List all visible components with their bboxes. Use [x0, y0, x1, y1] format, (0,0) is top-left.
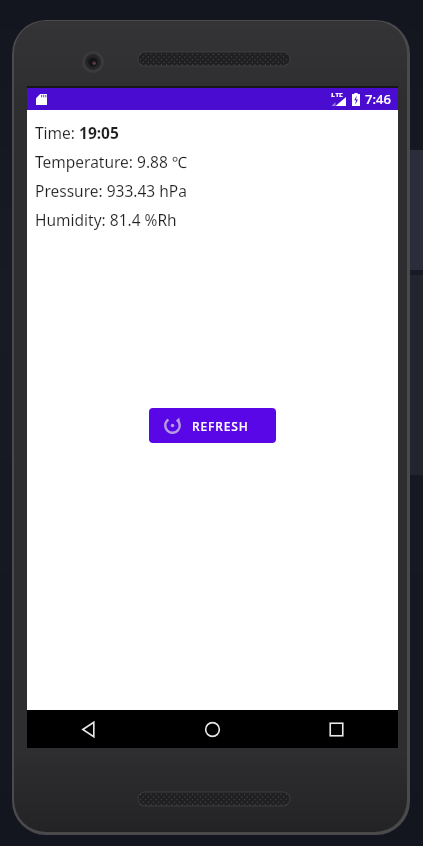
button[interactable]: Home	[150, 710, 274, 748]
staticText: Temperature: 9.88 ℃	[35, 151, 188, 172]
staticText: Time: 19:05	[35, 122, 119, 143]
staticText: 7:46	[365, 90, 391, 108]
staticText: Pressure: 933.43 hPa	[35, 180, 187, 201]
button[interactable]: Recents	[274, 710, 398, 748]
button[interactable]: REFRESH	[149, 408, 276, 443]
button[interactable]: Back	[27, 710, 150, 748]
staticText: REFRESH	[192, 418, 249, 434]
staticText: Humidity: 81.4 %Rh	[35, 209, 177, 230]
